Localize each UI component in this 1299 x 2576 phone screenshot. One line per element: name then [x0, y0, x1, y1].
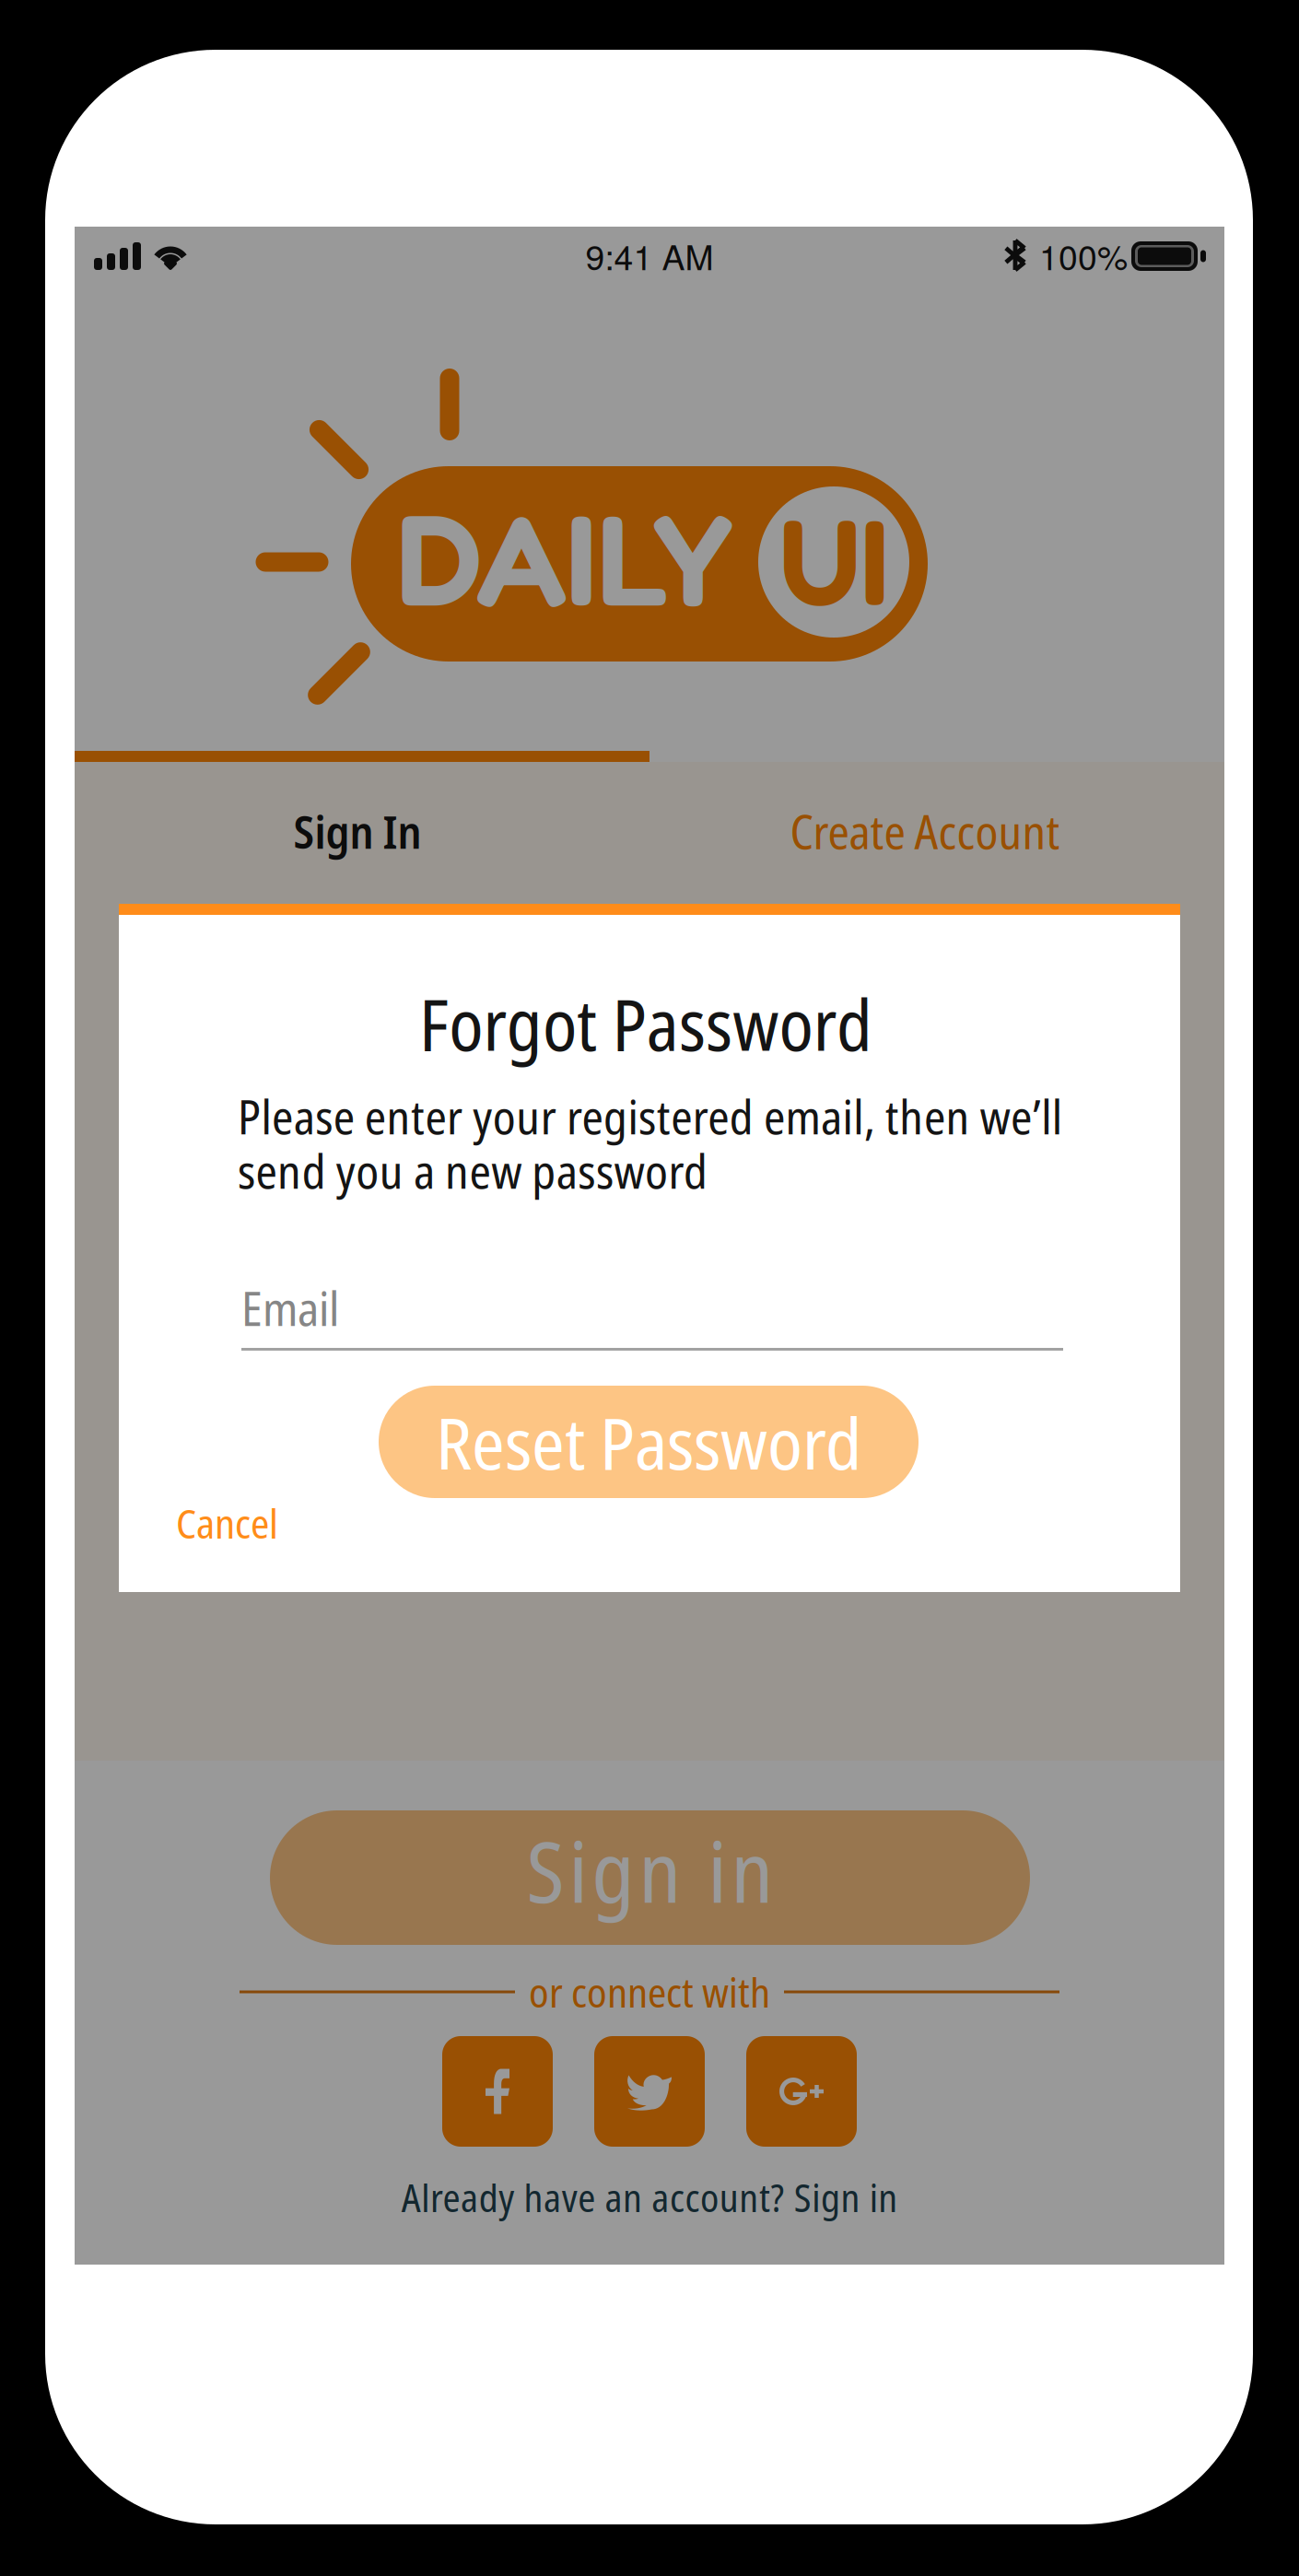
staticText: send you a new password	[238, 1139, 708, 1202]
button[interactable]: Sign in with Twitter	[594, 2036, 705, 2147]
staticText: Reset Password	[436, 1393, 861, 1490]
button[interactable]: Already have an account? Sign in	[75, 2170, 1224, 2225]
button[interactable]: Create Account	[638, 762, 1212, 900]
staticText: Create Account	[790, 799, 1060, 863]
staticText: Cancel	[176, 1495, 278, 1550]
staticText: UI	[779, 488, 889, 632]
staticText: or connect with	[529, 1964, 770, 2019]
staticText: Already have an account? Sign in	[401, 2171, 898, 2223]
staticText: 100%	[1039, 231, 1128, 280]
staticText: 9:41 AM	[585, 231, 714, 280]
staticText: Sign In	[293, 800, 421, 862]
button[interactable]: Sign in	[270, 1810, 1030, 1945]
button[interactable]: Sign in with Facebook	[442, 2036, 553, 2147]
button[interactable]: Cancel	[145, 1484, 366, 1562]
button[interactable]: Sign In	[70, 762, 645, 900]
staticText: Forgot Password	[419, 976, 872, 1071]
staticText: Sign in	[527, 1813, 773, 1927]
staticText: Email	[241, 1276, 339, 1340]
button[interactable]: Sign in with Google	[746, 2036, 857, 2147]
staticText: DAILY	[397, 480, 733, 635]
staticText: Please enter your registered email, then…	[238, 1084, 1062, 1148]
button[interactable]: Reset Password	[379, 1386, 919, 1498]
